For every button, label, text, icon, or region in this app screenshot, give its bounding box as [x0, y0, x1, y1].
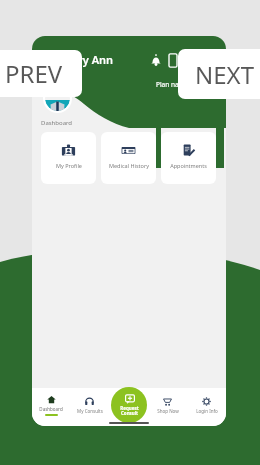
- staticText: Plan name here: [156, 80, 204, 89]
- button[interactable]: My Profile: [41, 132, 96, 184]
- staticText: My Profile: [56, 162, 82, 169]
- staticText: Consult: [180, 90, 204, 99]
- staticText: My Consults: [77, 408, 103, 414]
- button[interactable]: NEXT: [178, 49, 260, 99]
- staticText: PREV: [5, 57, 63, 90]
- button[interactable]: PREV: [0, 50, 82, 97]
- staticText: Appointments: [170, 162, 207, 169]
- staticText: Dashboard: [39, 406, 63, 412]
- staticText: Medical History: [109, 162, 149, 169]
- staticText: Hi, Mary Ann: [44, 52, 114, 67]
- button[interactable]: Medical History: [101, 132, 156, 184]
- button[interactable]: My Consults: [70, 388, 109, 422]
- button[interactable]: Request Consult: [111, 387, 147, 423]
- button[interactable]: Shop Now: [148, 388, 187, 422]
- staticText: Login Info: [196, 408, 218, 414]
- staticText: Request Consult: [120, 405, 139, 416]
- button[interactable]: Notifications: [150, 54, 162, 66]
- staticText: Shop Now: [157, 408, 179, 414]
- staticText: Dashboard: [41, 119, 73, 127]
- staticText: NEXT: [195, 58, 254, 91]
- button[interactable]: Appointments: [161, 132, 216, 184]
- button[interactable]: Membership card: [168, 53, 178, 68]
- button[interactable]: Login Info: [187, 388, 226, 422]
- button[interactable]: Dashboard: [32, 388, 70, 422]
